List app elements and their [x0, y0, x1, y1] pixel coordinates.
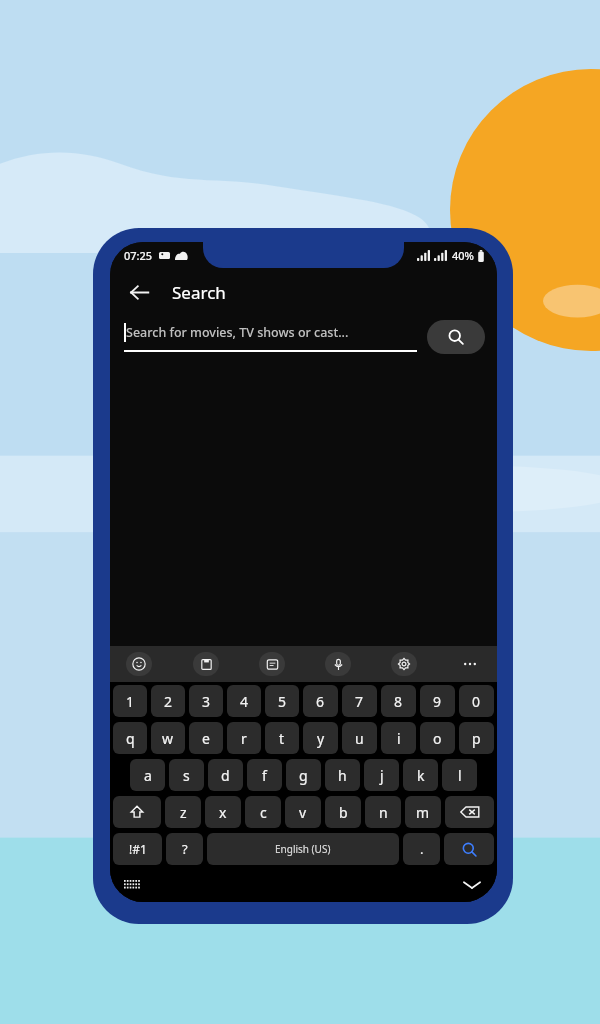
staticText: h	[338, 766, 347, 785]
button[interactable]: ?	[166, 833, 203, 865]
button[interactable]: 3	[189, 685, 223, 717]
staticText: t	[279, 729, 285, 748]
staticText: b	[339, 803, 348, 822]
staticText: 0	[472, 692, 481, 711]
button[interactable]: Hide keyboard	[459, 872, 485, 898]
staticText: ?	[182, 840, 188, 858]
button[interactable]: t	[265, 722, 299, 754]
button[interactable]: 0	[459, 685, 494, 717]
staticText: k	[417, 766, 425, 785]
button[interactable]: f	[247, 759, 282, 791]
staticText: u	[355, 729, 364, 748]
button[interactable]: 9	[420, 685, 455, 717]
staticText: !#1	[129, 841, 147, 857]
staticText: English (US)	[275, 842, 331, 856]
button[interactable]: a	[130, 759, 165, 791]
button[interactable]: i	[381, 722, 416, 754]
button[interactable]: Backspace	[445, 796, 494, 828]
button[interactable]: g	[286, 759, 321, 791]
staticText: w	[162, 729, 174, 748]
button[interactable]: !#1	[113, 833, 162, 865]
staticText: 7	[355, 692, 364, 711]
staticText: 8	[394, 692, 403, 711]
staticText: y	[317, 729, 325, 748]
staticText: 6	[316, 692, 325, 711]
staticText: c	[260, 803, 267, 822]
staticText: 1	[126, 692, 135, 711]
button[interactable]: Keyboard layout	[120, 873, 144, 897]
staticText: f	[262, 766, 267, 785]
button[interactable]: r	[227, 722, 261, 754]
staticText: r	[241, 729, 247, 748]
staticText: n	[379, 803, 388, 822]
button[interactable]: Voice input	[325, 652, 351, 676]
button[interactable]: Shift	[113, 796, 161, 828]
button[interactable]: Settings	[391, 652, 417, 676]
staticText: 5	[278, 692, 287, 711]
button[interactable]: x	[205, 796, 241, 828]
button[interactable]: e	[189, 722, 223, 754]
staticText: z	[180, 803, 187, 822]
staticText: o	[433, 729, 442, 748]
button[interactable]: Search	[427, 320, 485, 354]
button[interactable]: 6	[303, 685, 338, 717]
staticText: 2	[164, 692, 173, 711]
staticText: 3	[202, 692, 211, 711]
button[interactable]: s	[169, 759, 204, 791]
staticText: e	[202, 729, 210, 748]
button[interactable]: h	[325, 759, 360, 791]
staticText: 9	[433, 692, 442, 711]
staticText: j	[380, 766, 384, 785]
staticText: p	[472, 729, 481, 748]
button[interactable]: w	[151, 722, 185, 754]
button[interactable]: Text edit	[259, 652, 285, 676]
staticText: d	[221, 766, 230, 785]
staticText: .	[420, 840, 424, 858]
button[interactable]: Back	[118, 271, 160, 313]
button[interactable]: More	[457, 651, 483, 677]
staticText: s	[183, 766, 190, 785]
staticText: 07:25	[124, 248, 153, 263]
button[interactable]: l	[442, 759, 477, 791]
button[interactable]: b	[325, 796, 361, 828]
staticText: i	[397, 729, 401, 748]
staticText: 4	[240, 692, 249, 711]
staticText: a	[144, 766, 152, 785]
button[interactable]: c	[245, 796, 281, 828]
button[interactable]: p	[459, 722, 494, 754]
button[interactable]: 2	[151, 685, 185, 717]
staticText: l	[458, 766, 462, 785]
staticText: m	[416, 803, 430, 822]
button[interactable]: Search for movies, TV shows or cast...	[124, 323, 417, 352]
button[interactable]: 8	[381, 685, 416, 717]
button[interactable]: v	[285, 796, 321, 828]
button[interactable]: English (US)	[207, 833, 399, 865]
button[interactable]: n	[365, 796, 401, 828]
staticText: x	[219, 803, 227, 822]
button[interactable]: u	[342, 722, 377, 754]
button[interactable]: j	[364, 759, 399, 791]
staticText: q	[126, 729, 135, 748]
staticText: 40%	[452, 248, 474, 263]
staticText: g	[299, 766, 308, 785]
button[interactable]: Emoji	[126, 652, 152, 676]
button[interactable]: Search	[444, 833, 494, 865]
button[interactable]: k	[403, 759, 438, 791]
button[interactable]: y	[303, 722, 338, 754]
button[interactable]: 1	[113, 685, 147, 717]
staticText: v	[299, 803, 307, 822]
button[interactable]: m	[405, 796, 441, 828]
button[interactable]: z	[165, 796, 201, 828]
staticText: Search	[172, 281, 226, 304]
button[interactable]: .	[403, 833, 440, 865]
button[interactable]: d	[208, 759, 243, 791]
staticText: Search for movies, TV shows or cast...	[126, 324, 349, 341]
button[interactable]: q	[113, 722, 147, 754]
button[interactable]: 4	[227, 685, 261, 717]
button[interactable]: 7	[342, 685, 377, 717]
button[interactable]: 5	[265, 685, 299, 717]
button[interactable]: o	[420, 722, 455, 754]
button[interactable]: Clipboard	[193, 652, 219, 676]
